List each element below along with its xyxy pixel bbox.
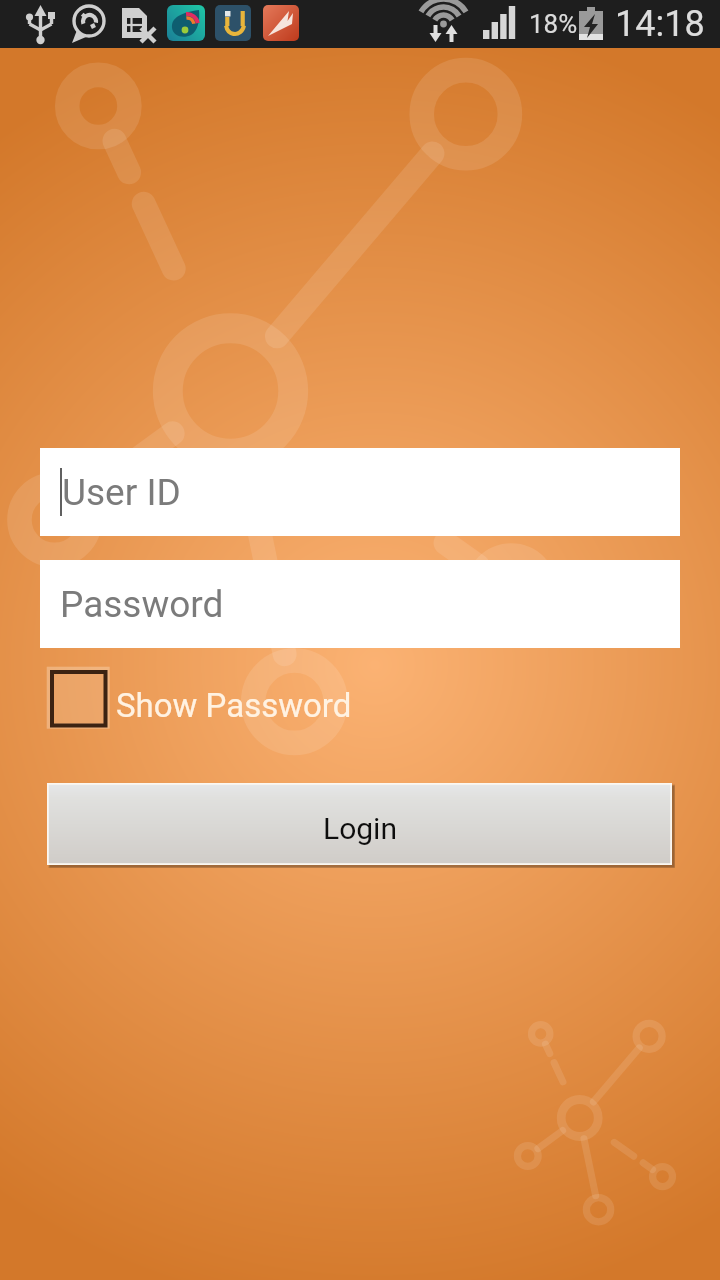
staticText: User ID	[62, 471, 181, 514]
staticText: 14:18	[615, 3, 705, 45]
button[interactable]: User ID	[40, 448, 680, 536]
staticText: Login	[323, 811, 397, 846]
staticText: 18%	[529, 9, 578, 39]
staticText: Show Password	[116, 686, 352, 725]
button[interactable]: Password	[40, 560, 680, 648]
button[interactable]: Show Password	[47, 667, 352, 728]
staticText: Password	[60, 583, 224, 626]
button[interactable]: Login	[47, 783, 672, 865]
